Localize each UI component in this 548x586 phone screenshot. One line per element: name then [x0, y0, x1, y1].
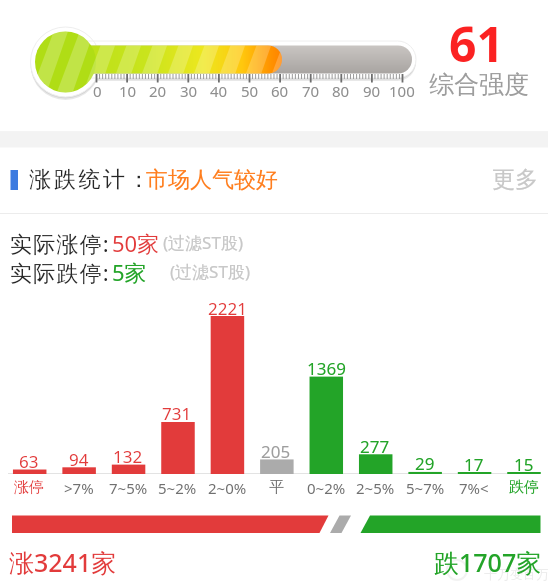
- staticText: 132: [113, 445, 143, 468]
- staticText: 20: [149, 81, 167, 101]
- staticText: 40: [210, 81, 228, 101]
- staticText: 63: [19, 450, 39, 473]
- staticText: 十万变百万: [484, 566, 548, 582]
- staticText: 5~2%: [158, 478, 197, 498]
- staticText: 277: [360, 435, 390, 458]
- staticText: (过滤ST股): [163, 231, 243, 254]
- staticText: 29: [415, 452, 435, 475]
- staticText: 5家: [112, 257, 147, 287]
- staticText: 94: [69, 448, 89, 471]
- staticText: 跌1707家: [434, 545, 542, 579]
- staticText: 1369: [307, 357, 346, 380]
- staticText: 平: [269, 478, 284, 497]
- staticText: 实际跌停:: [10, 257, 110, 287]
- staticText: 2~5%: [356, 478, 395, 498]
- button[interactable]: 更多: [488, 161, 546, 190]
- staticText: 涨3241家: [9, 545, 117, 579]
- staticText: 0~2%: [307, 478, 346, 498]
- staticText: 100: [389, 81, 415, 101]
- staticText: 61: [449, 11, 504, 76]
- staticText: 涨停: [14, 478, 44, 497]
- staticText: 30: [180, 81, 198, 101]
- staticText: 7~5%: [109, 478, 148, 498]
- staticText: 市场人气较好: [146, 166, 278, 194]
- staticText: (过滤ST股): [170, 260, 250, 283]
- staticText: 实际涨停:: [10, 228, 110, 258]
- staticText: 17: [464, 453, 484, 476]
- staticText: 2~0%: [208, 478, 247, 498]
- staticText: 涨跌统计：: [28, 166, 151, 194]
- staticText: 60: [271, 81, 289, 101]
- staticText: 5~7%: [406, 478, 445, 498]
- staticText: 0: [93, 81, 102, 101]
- staticText: 731: [162, 402, 192, 425]
- staticText: 50: [241, 81, 259, 101]
- staticText: 15: [514, 453, 534, 476]
- staticText: 205: [261, 440, 291, 463]
- staticText: 70: [302, 81, 320, 101]
- staticText: 80: [332, 81, 350, 101]
- staticText: 7%<: [459, 478, 489, 498]
- staticText: >7%: [64, 478, 94, 498]
- staticText: 90: [363, 81, 381, 101]
- staticText: 10: [119, 81, 137, 101]
- staticText: 跌停: [509, 478, 539, 497]
- staticText: 更多: [492, 165, 538, 194]
- staticText: 50家: [112, 228, 160, 258]
- staticText: 2221: [208, 297, 247, 320]
- button[interactable]: 涨跌统计：: [24, 162, 284, 190]
- staticText: 综合强度: [429, 69, 529, 100]
